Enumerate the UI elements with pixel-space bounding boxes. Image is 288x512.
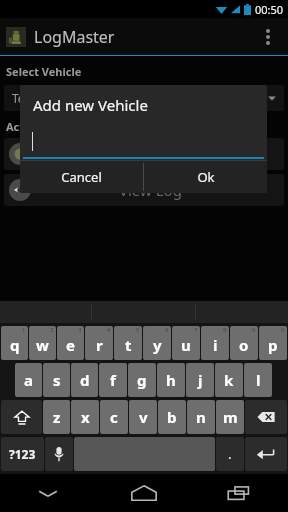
staticText: e	[66, 335, 75, 355]
staticText: z	[53, 407, 61, 427]
button[interactable]: s	[43, 363, 70, 397]
button[interactable]: 4	[85, 326, 113, 360]
button[interactable]: a	[15, 363, 42, 397]
button[interactable]: d	[71, 363, 98, 397]
staticText: r	[96, 335, 103, 355]
staticText: 00:50	[255, 2, 284, 17]
staticText: p	[268, 335, 278, 355]
staticText: x	[81, 407, 90, 427]
button[interactable]: Hide keyboard	[0, 474, 96, 512]
staticText: 5	[136, 326, 140, 334]
button[interactable]: 9	[230, 326, 258, 360]
staticText: q	[10, 335, 20, 355]
button[interactable]: v	[129, 400, 157, 434]
button[interactable]: b	[158, 400, 186, 434]
button[interactable]: 3	[57, 326, 84, 360]
staticText: 0	[281, 326, 285, 334]
button[interactable]: 1	[1, 326, 28, 360]
button[interactable]: Ok	[144, 161, 267, 193]
staticText: k	[224, 370, 234, 390]
button[interactable]: Te	[4, 85, 284, 111]
button[interactable]: n	[187, 400, 215, 434]
staticText: w	[36, 335, 49, 355]
staticText: s	[53, 370, 61, 390]
button[interactable]: Cancel	[20, 161, 143, 193]
staticText: ?123	[9, 446, 36, 462]
button[interactable]: 8	[201, 326, 229, 360]
button[interactable]: l	[244, 363, 272, 397]
staticText: l	[256, 370, 261, 390]
button[interactable]: g	[128, 363, 156, 397]
button[interactable]: More options	[254, 18, 282, 55]
button[interactable]: Enter	[245, 437, 287, 471]
staticText: 9	[252, 326, 256, 334]
staticText: j	[198, 370, 203, 390]
staticText: y	[153, 335, 162, 355]
button[interactable]: z	[43, 400, 70, 434]
staticText: .	[228, 445, 232, 463]
button[interactable]: f	[99, 363, 127, 397]
staticText: Add new Vehicle	[33, 95, 148, 115]
staticText: v	[139, 407, 148, 427]
staticText: t	[125, 335, 132, 355]
staticText: Cancel	[61, 168, 102, 186]
button[interactable]: 6	[143, 326, 171, 360]
staticText: u	[181, 335, 191, 355]
staticText: Ok	[197, 168, 215, 186]
button[interactable]: Recent apps	[192, 474, 288, 512]
staticText: i	[213, 335, 218, 355]
button[interactable]: 7	[172, 326, 200, 360]
staticText: o	[239, 335, 249, 355]
staticText: h	[166, 370, 176, 390]
staticText: 2	[50, 326, 54, 334]
staticText: 4	[107, 326, 111, 334]
staticText: d	[80, 370, 90, 390]
button[interactable]: Shift	[1, 400, 42, 434]
button[interactable]	[4, 138, 284, 170]
staticText: Te	[12, 90, 25, 106]
button[interactable]: Home	[96, 474, 192, 512]
button[interactable]: k	[215, 363, 243, 397]
staticText: 8	[223, 326, 227, 334]
button[interactable]: 0	[259, 326, 287, 360]
button[interactable]: Backspace	[245, 400, 287, 434]
button[interactable]: View Log	[4, 174, 284, 206]
button[interactable]: h	[157, 363, 185, 397]
button[interactable]: x	[71, 400, 99, 434]
staticText: c	[110, 407, 118, 427]
staticText: b	[167, 407, 177, 427]
staticText: 1	[22, 326, 26, 334]
staticText: LogMaster	[34, 26, 115, 48]
button[interactable]: .	[216, 437, 244, 471]
staticText: 3	[78, 326, 82, 334]
button[interactable]: m	[216, 400, 244, 434]
staticText: 7	[194, 326, 198, 334]
staticText: g	[137, 370, 147, 390]
button[interactable]	[22, 129, 265, 159]
staticText: n	[196, 407, 206, 427]
button[interactable]: Voice input	[45, 437, 73, 471]
staticText: Acti	[6, 119, 28, 134]
staticText: f	[110, 370, 116, 390]
button[interactable]: c	[100, 400, 128, 434]
button[interactable]: 5	[114, 326, 142, 360]
button[interactable]: ?123	[1, 437, 44, 471]
button[interactable]: 2	[29, 326, 56, 360]
staticText: m	[223, 407, 238, 427]
staticText: a	[24, 370, 33, 390]
button[interactable]: j	[186, 363, 214, 397]
staticText: Select Vehicle	[6, 64, 82, 79]
staticText: View Log	[119, 180, 182, 200]
staticText: 6	[165, 326, 169, 334]
